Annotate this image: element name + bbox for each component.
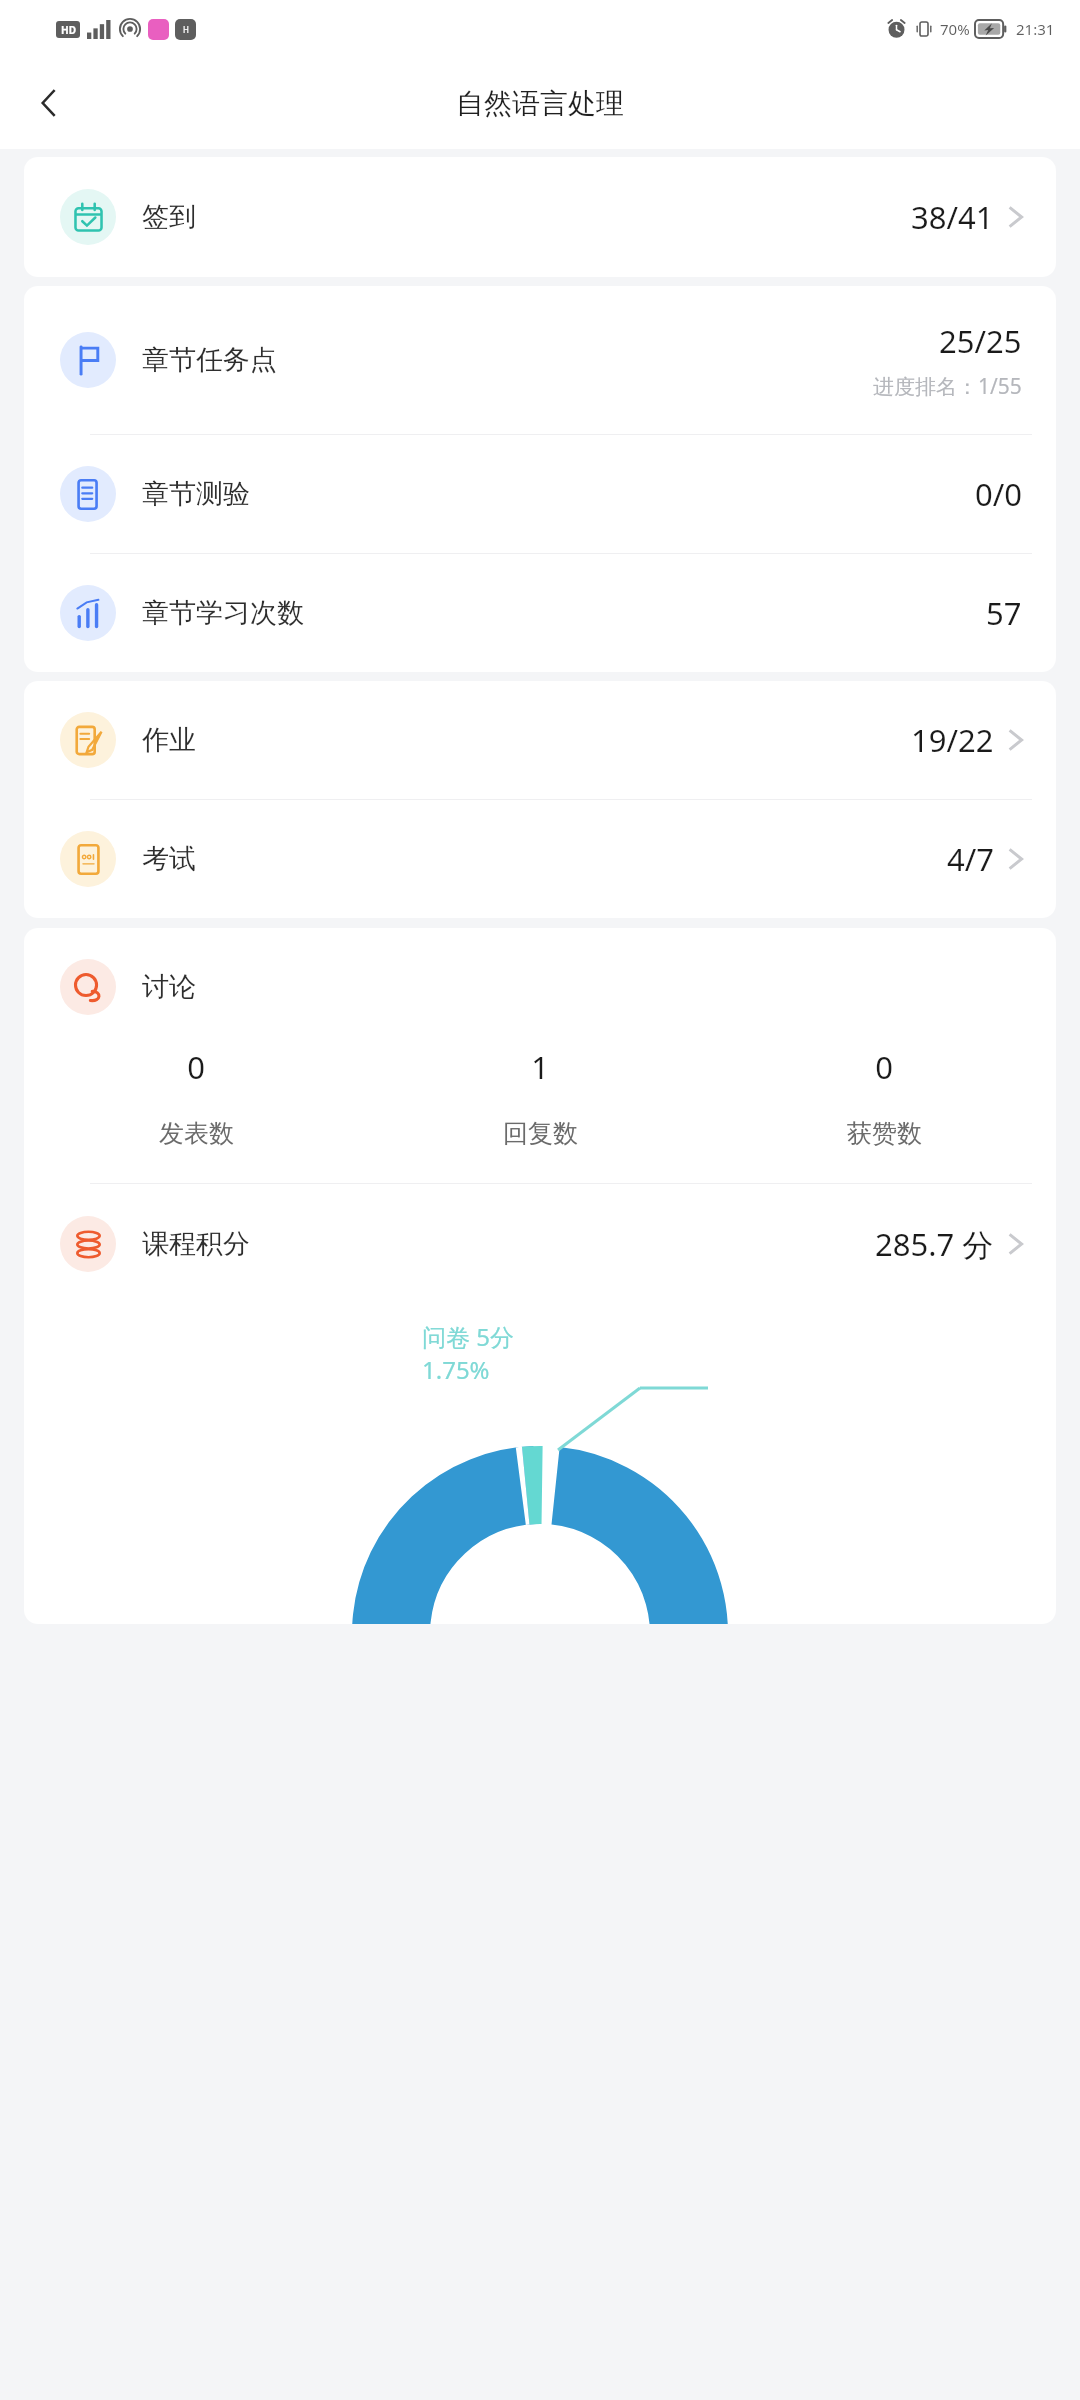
button[interactable]: 讨论 (24, 928, 1056, 1046)
staticText: 0 (187, 1046, 205, 1088)
staticText: 0 (875, 1046, 893, 1088)
staticText: 章节学习次数 (142, 596, 304, 630)
staticText: 25/25 (939, 320, 1022, 362)
staticText: 1.75% (422, 1353, 490, 1386)
staticText: H (183, 24, 189, 35)
staticText: 0/0 (975, 473, 1022, 515)
staticText: 4/7 (947, 838, 994, 880)
button[interactable]: 课程积分 (24, 1184, 1056, 1304)
staticText: 章节测验 (142, 477, 250, 511)
button[interactable]: 签到 (24, 157, 1056, 277)
staticText: 作业 (142, 723, 196, 757)
button[interactable]: Back (18, 72, 80, 134)
staticText: 回复数 (503, 1118, 578, 1149)
staticText: 自然语言处理 (456, 86, 624, 121)
staticText: 19/22 (911, 719, 994, 761)
staticText: 获赞数 (847, 1118, 922, 1149)
staticText: 讨论 (142, 970, 196, 1004)
staticText: 285.7 分 (875, 1223, 994, 1265)
button[interactable]: 章节任务点 (24, 286, 1056, 434)
button[interactable]: 章节测验 (24, 435, 1056, 553)
staticText: 问卷 5分 (422, 1320, 514, 1353)
staticText: 章节任务点 (142, 343, 277, 377)
button[interactable]: 考试 (24, 800, 1056, 918)
staticText: 进度排名：1/55 (873, 372, 1022, 401)
button[interactable]: 作业 (24, 681, 1056, 799)
staticText: 70% (940, 19, 970, 39)
staticText: 21:31 (1016, 19, 1055, 39)
staticText: 课程积分 (142, 1227, 250, 1261)
staticText: 38/41 (911, 196, 994, 238)
staticText: 签到 (142, 200, 196, 234)
staticText: 考试 (142, 842, 196, 876)
staticText: HD (61, 23, 76, 37)
staticText: 1 (531, 1046, 549, 1088)
staticText: 发表数 (159, 1118, 234, 1149)
staticText: 57 (986, 592, 1022, 634)
button[interactable]: 章节学习次数 (24, 554, 1056, 672)
